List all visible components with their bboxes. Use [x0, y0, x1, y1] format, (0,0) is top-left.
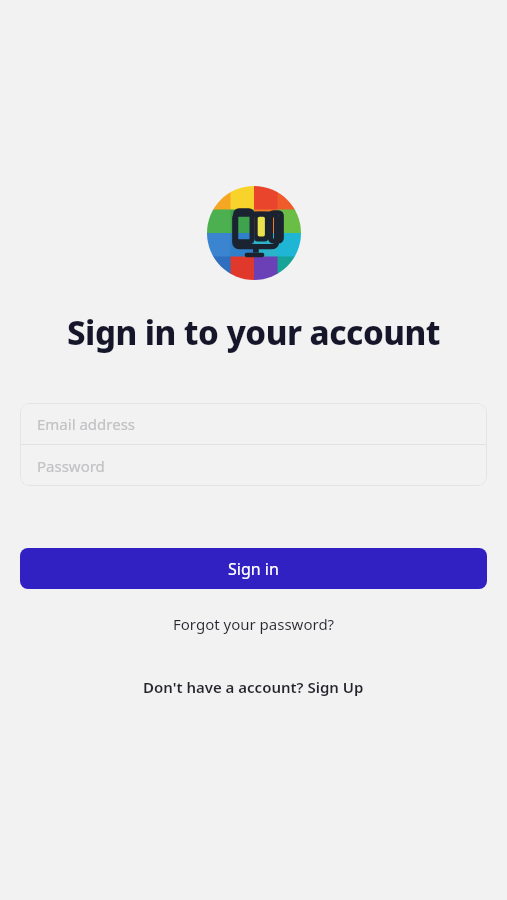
staticText: Sign in to your account: [67, 310, 440, 355]
staticText: Password: [37, 456, 105, 476]
button[interactable]: Sign in: [20, 548, 487, 589]
staticText: Sign in: [228, 558, 279, 580]
staticText: Don't have a account? Sign Up: [143, 677, 364, 697]
button[interactable]: Email address: [20, 403, 487, 444]
staticText: Forgot your password?: [173, 614, 335, 634]
button[interactable]: Password: [20, 445, 487, 486]
staticText: Email address: [37, 414, 136, 434]
other: App logo: [207, 186, 301, 280]
button[interactable]: Forgot your password?: [161, 609, 347, 639]
button[interactable]: Don't have a account? Sign Up: [131, 672, 376, 702]
